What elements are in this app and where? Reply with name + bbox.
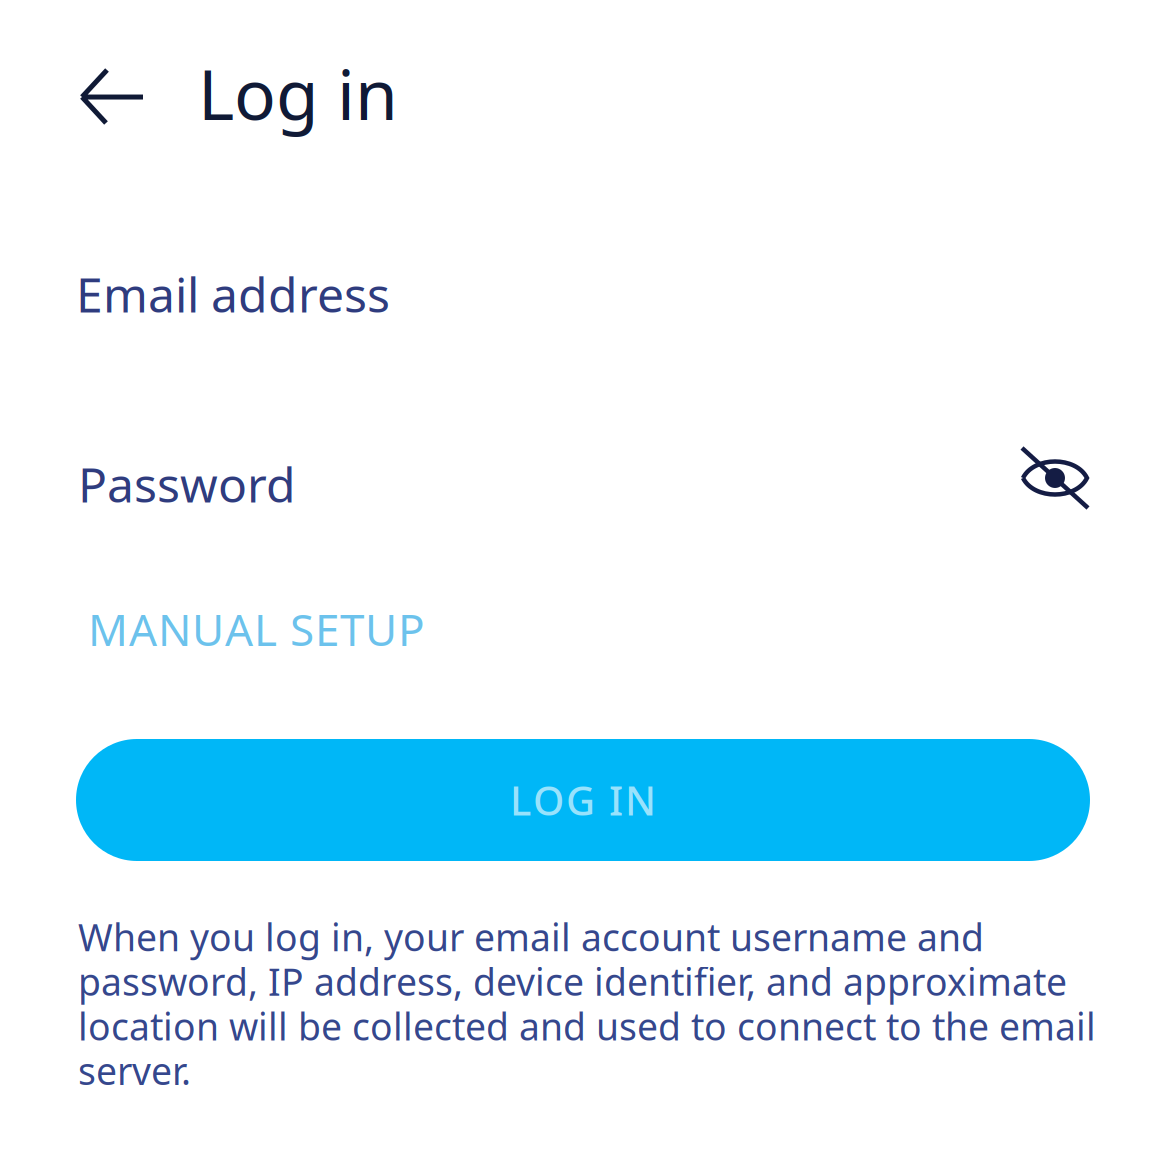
staticText: MANUAL SETUP: [88, 600, 425, 658]
staticText: Email address: [76, 262, 390, 326]
button[interactable]: Show password: [1000, 447, 1092, 521]
staticText: When you log in, your email account user…: [78, 912, 1096, 1095]
button[interactable]: Email address: [0, 265, 1154, 323]
staticText: LOG IN: [510, 773, 656, 826]
button[interactable]: LOG IN: [76, 739, 1090, 861]
button[interactable]: MANUAL SETUP: [0, 602, 1154, 656]
button[interactable]: Back: [0, 40, 168, 148]
staticText: Log in: [198, 47, 398, 139]
button[interactable]: Password: [78, 455, 1000, 513]
staticText: Password: [78, 452, 296, 516]
